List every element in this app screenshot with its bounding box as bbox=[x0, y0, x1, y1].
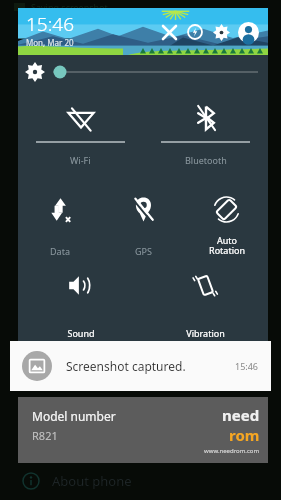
button[interactable]: User profile bbox=[234, 18, 262, 46]
staticText: GPS bbox=[135, 245, 152, 257]
staticText: rom bbox=[229, 425, 260, 445]
button[interactable]: Screenshot captured. bbox=[10, 341, 271, 391]
staticText: Data bbox=[50, 245, 70, 257]
staticText: R821 bbox=[32, 428, 58, 443]
staticText: Auto Rotation bbox=[209, 234, 245, 257]
staticText: Vibration bbox=[186, 327, 225, 339]
button[interactable]: Data bbox=[18, 191, 102, 263]
staticText: Model number bbox=[32, 408, 116, 424]
staticText: Mon, Mar 20 bbox=[26, 37, 74, 48]
button[interactable]: Bluetooth bbox=[143, 95, 268, 185]
button[interactable]: Sound bbox=[18, 267, 143, 345]
button[interactable]: Model number bbox=[18, 397, 268, 463]
button[interactable]: Settings bbox=[208, 19, 234, 45]
staticText: Sound bbox=[67, 327, 95, 339]
staticText: Screenshot captured. bbox=[66, 358, 186, 374]
staticText: About phone bbox=[52, 472, 132, 490]
staticText: need bbox=[222, 405, 260, 425]
button[interactable]: Wi-Fi bbox=[18, 95, 143, 185]
button[interactable]: Vibration bbox=[143, 267, 268, 345]
staticText: 15:46 bbox=[26, 11, 75, 37]
button[interactable]: Auto Rotation bbox=[185, 191, 268, 263]
button[interactable]: Brightness bbox=[18, 55, 268, 89]
button[interactable]: About phone bbox=[0, 466, 281, 496]
staticText: Wi-Fi bbox=[70, 154, 91, 166]
staticText: 15:46 bbox=[235, 360, 259, 372]
staticText: Saving screenshot... bbox=[31, 1, 116, 13]
button[interactable]: Battery bbox=[182, 19, 208, 45]
staticText: www.needrom.com bbox=[204, 447, 260, 455]
button[interactable]: Close bbox=[156, 19, 182, 45]
staticText: Bluetooth bbox=[185, 154, 227, 166]
button[interactable]: GPS bbox=[102, 191, 185, 263]
